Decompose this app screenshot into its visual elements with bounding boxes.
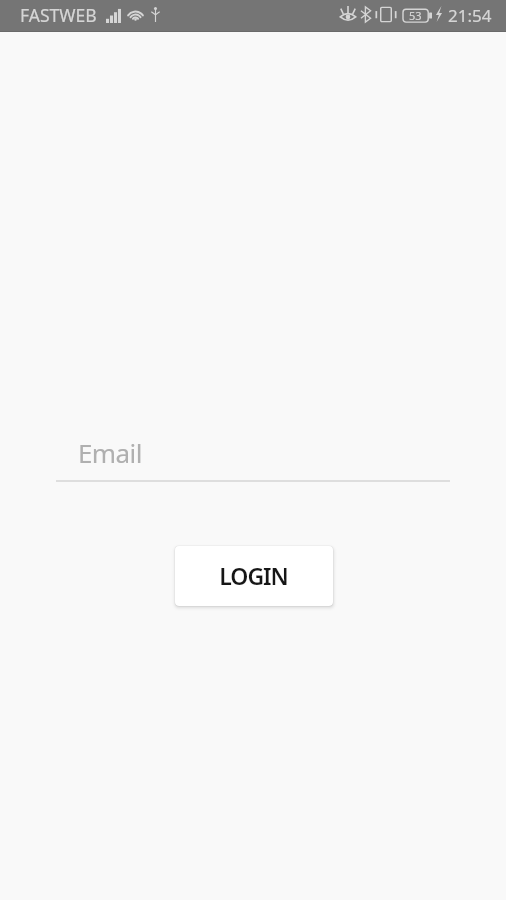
staticText: Email [78,435,142,470]
button[interactable]: Email input field [56,436,450,482]
staticText: FASTWEB [20,3,97,27]
staticText: 21:54 [448,4,492,27]
button[interactable]: LOGIN [175,546,333,606]
staticText: 53 [409,8,422,23]
staticText: LOGIN [219,560,288,591]
